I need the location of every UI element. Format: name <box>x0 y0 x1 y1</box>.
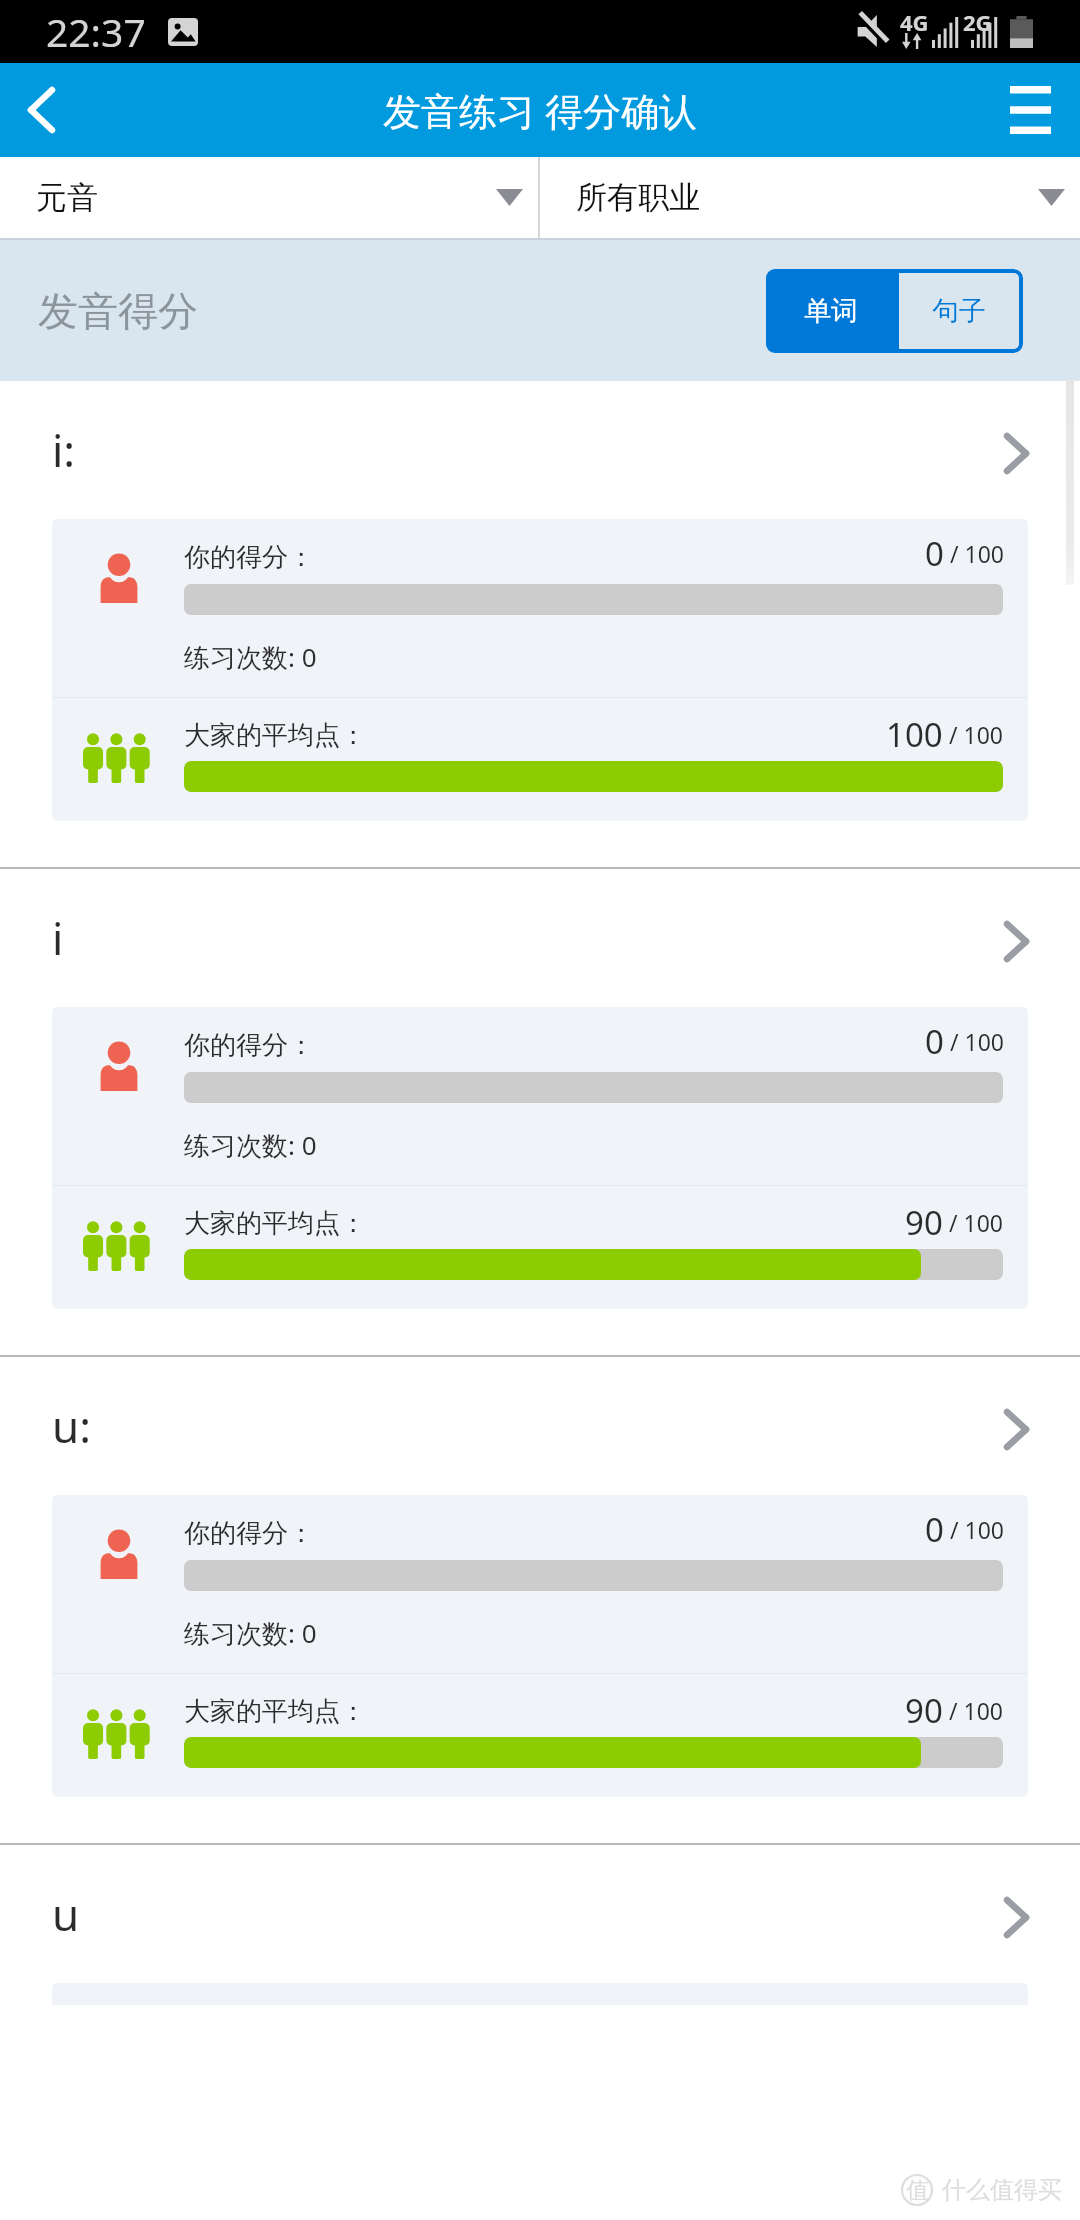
staticText: 单词 <box>804 294 858 328</box>
button[interactable]: 句子 <box>895 269 1023 353</box>
staticText: / 100 <box>944 538 1004 569</box>
staticText: 大家的平均点： <box>184 1207 366 1240</box>
staticText: / 100 <box>943 1695 1003 1726</box>
staticText: 90 <box>905 1200 943 1245</box>
staticText: u: <box>52 1396 91 1456</box>
other: Open u: <box>1005 1410 1028 1449</box>
staticText: 4G <box>900 7 929 37</box>
staticText: 100 <box>886 712 943 757</box>
staticText: u <box>52 1884 80 1944</box>
staticText: 练习次数: 0 <box>184 1127 317 1163</box>
staticText: 0 <box>925 1507 944 1552</box>
staticText: / 100 <box>943 719 1003 750</box>
other: Open u <box>1005 1898 1028 1937</box>
button[interactable]: u <box>0 1845 1080 1983</box>
staticText: 22:37 <box>46 5 146 58</box>
other: Open i <box>1005 922 1028 961</box>
staticText: 值 <box>906 2176 929 2205</box>
staticText: 90 <box>905 1688 943 1733</box>
other: Open i: <box>1005 434 1028 473</box>
staticText: / 100 <box>943 2183 1003 2214</box>
staticText: 2G <box>963 7 992 37</box>
button[interactable]: Menu <box>993 63 1080 157</box>
button[interactable]: i: <box>0 381 1080 519</box>
button[interactable]: 元音 <box>0 157 538 238</box>
staticText: i <box>52 908 64 968</box>
staticText: / 100 <box>944 2002 1004 2033</box>
staticText: / 100 <box>944 1514 1004 1545</box>
staticText: 练习次数: 0 <box>184 1615 317 1651</box>
staticText: 你的得分： <box>184 1517 314 1550</box>
staticText: 练习次数: 0 <box>184 639 317 675</box>
staticText: / 100 <box>944 1026 1004 1057</box>
button[interactable]: Back <box>0 63 88 157</box>
staticText: / 100 <box>943 1207 1003 1238</box>
button[interactable]: 所有职业 <box>540 157 1080 238</box>
staticText: 发音得分 <box>38 286 198 336</box>
staticText: 句子 <box>932 294 986 328</box>
staticText: 发音练习 得分确认 <box>383 84 697 136</box>
staticText: 0 <box>925 531 944 576</box>
staticText: 0 <box>925 1019 944 1064</box>
staticText: 什么值得买 <box>942 2175 1062 2205</box>
button[interactable]: 单词 <box>766 269 895 353</box>
staticText: 你的得分： <box>184 1029 314 1062</box>
button[interactable]: i <box>0 869 1080 1007</box>
staticText: 元音 <box>36 178 98 217</box>
button[interactable]: u: <box>0 1357 1080 1495</box>
staticText: 大家的平均点： <box>184 1695 366 1728</box>
staticText: 所有职业 <box>576 178 700 217</box>
staticText: 大家的平均点： <box>184 719 366 752</box>
staticText: 0 <box>925 1995 944 2040</box>
staticText: 你的得分： <box>184 541 314 574</box>
staticText: i: <box>52 420 76 480</box>
staticText: 90 <box>905 2176 943 2220</box>
